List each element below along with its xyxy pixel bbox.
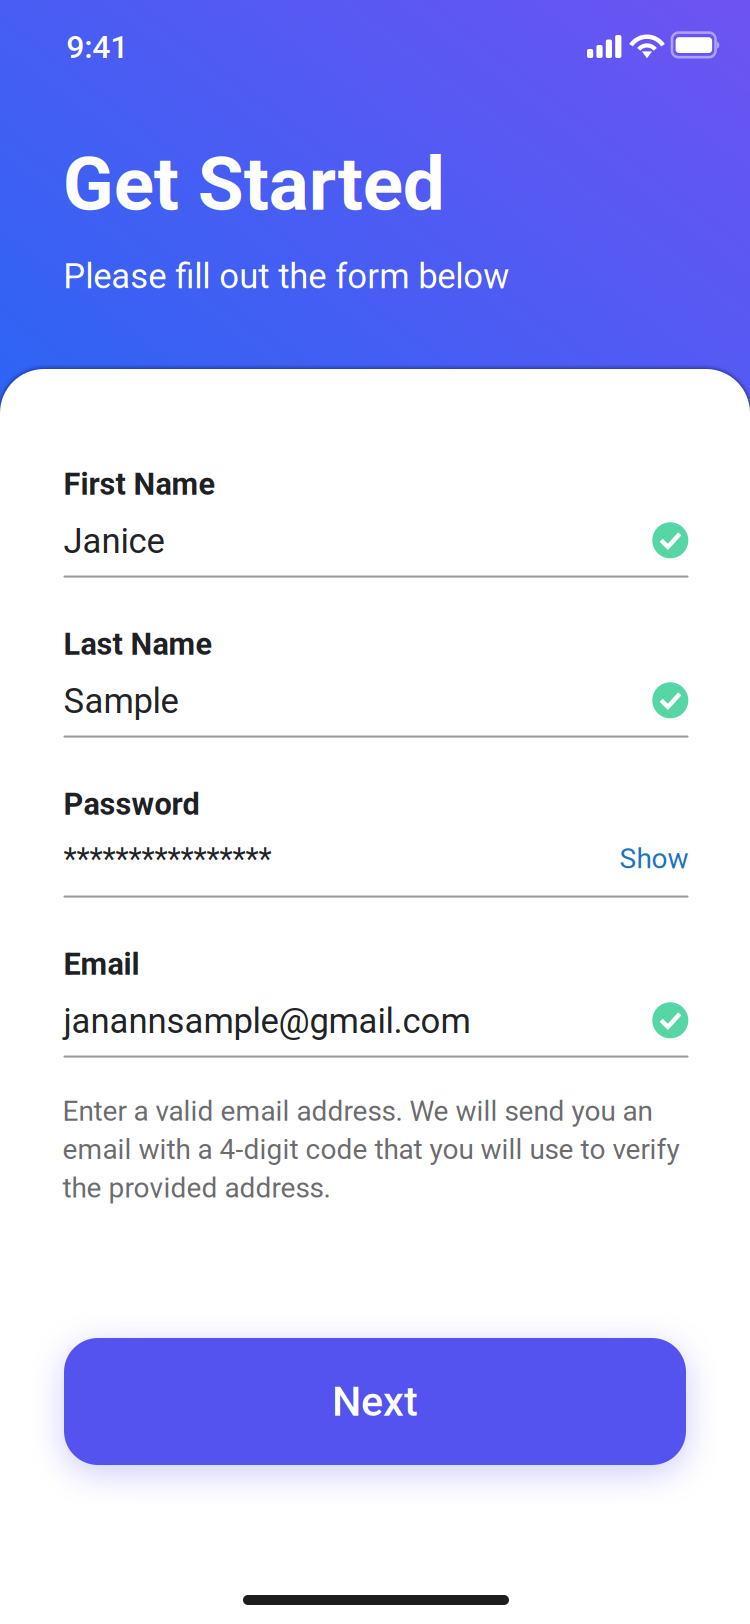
staticText: Get Started — [63, 140, 445, 228]
staticText: **************** — [63, 841, 271, 877]
staticText: First Name — [63, 466, 215, 502]
staticText: Enter a valid email address. We will sen… — [63, 1095, 680, 1204]
staticText: Janice — [63, 521, 164, 561]
staticText: Email — [63, 946, 139, 982]
button[interactable]: Last Name — [63, 618, 688, 738]
button[interactable]: Show — [598, 833, 688, 885]
staticText: Last Name — [63, 626, 212, 662]
button[interactable]: Next — [64, 1338, 686, 1465]
staticText: Sample — [63, 681, 178, 721]
staticText: Password — [63, 786, 199, 822]
staticText: Show — [619, 842, 688, 875]
staticText: Please fill out the form below — [63, 256, 509, 297]
staticText: Next — [332, 1377, 418, 1426]
button[interactable]: Email — [63, 938, 688, 1058]
button[interactable]: Password — [63, 778, 688, 898]
button[interactable]: First Name — [63, 458, 688, 578]
staticText: janannsample@gmail.com — [63, 1001, 470, 1041]
staticText: 9:41 — [66, 28, 128, 66]
